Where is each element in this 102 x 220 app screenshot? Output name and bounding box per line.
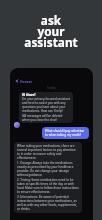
staticText: 1. Dosage: Always take the medications e…	[17, 161, 79, 177]
staticText: I'm your privacy-focused assistant and h…	[22, 97, 70, 113]
staticText: ask your assistant	[0, 12, 102, 50]
staticText: What should I pay attention to when taki…	[45, 129, 86, 137]
staticText: When taking your medications, there are …	[17, 144, 79, 160]
staticText: (All messages will be deleted when you c…	[22, 114, 70, 122]
staticText: 3. Interactions: Be aware of potential i…	[17, 195, 79, 211]
button[interactable]: Back to Honest	[10, 68, 93, 86]
staticText: Hi there!	[22, 93, 36, 97]
staticText: Honest	[20, 79, 32, 84]
staticText: 2. Timing: Some medications need to be t…	[17, 178, 79, 194]
staticText: Today	[14, 86, 89, 90]
